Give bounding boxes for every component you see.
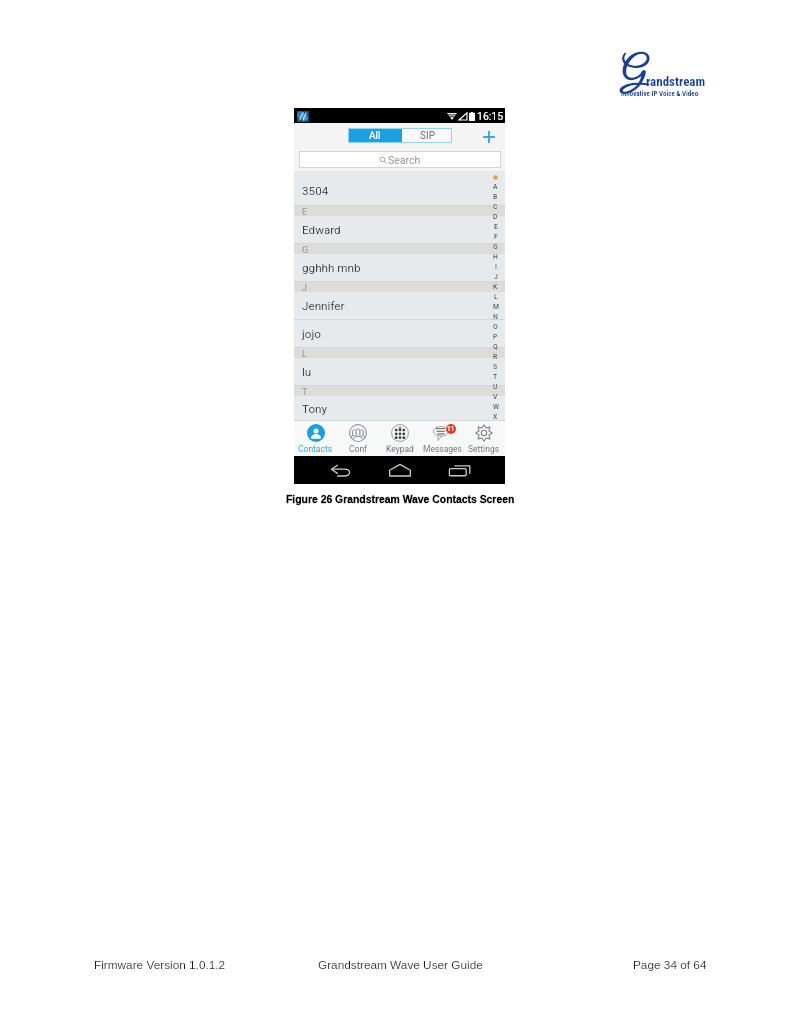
staticText: K <box>493 283 498 291</box>
button[interactable]: Search <box>299 151 501 168</box>
staticText: E <box>302 207 308 217</box>
staticText: T <box>302 387 308 397</box>
staticText: B <box>493 193 498 201</box>
staticText: X <box>493 413 498 421</box>
staticText: T <box>493 373 498 381</box>
staticText: N <box>493 313 498 321</box>
button[interactable]: 11 <box>421 421 463 456</box>
staticText: Conf <box>349 444 368 454</box>
staticText: M <box>493 303 499 311</box>
staticText: Search <box>388 154 421 166</box>
staticText: G <box>621 52 645 95</box>
staticText: G <box>302 245 309 255</box>
staticText: Innovative IP Voice & Video <box>621 90 699 98</box>
button[interactable]: Home <box>387 460 413 480</box>
staticText: F <box>494 233 498 241</box>
staticText: jojo <box>302 327 321 341</box>
staticText: U <box>493 383 498 391</box>
staticText: Page 34 of 64 <box>633 958 707 971</box>
staticText: Grandstream Wave User Guide <box>318 958 483 971</box>
staticText: Jennifer <box>302 299 345 313</box>
staticText: J <box>302 283 307 293</box>
staticText: C <box>493 203 498 211</box>
staticText: Settings <box>468 444 500 454</box>
button[interactable]: 3504 <box>294 171 505 206</box>
staticText: SIP <box>420 130 435 142</box>
button[interactable]: Edward <box>294 216 505 244</box>
staticText: Tony <box>302 402 328 416</box>
staticText: gghhh mnb <box>302 261 361 275</box>
button[interactable]: Back <box>328 460 354 480</box>
button[interactable]: Keypad <box>379 421 421 456</box>
staticText: randstream <box>646 74 706 89</box>
button[interactable]: All <box>348 128 402 143</box>
staticText: R <box>493 353 498 361</box>
staticText: 3504 <box>302 184 329 198</box>
button[interactable]: Conf <box>337 421 379 456</box>
staticText: All <box>369 130 381 142</box>
staticText: H <box>493 253 498 261</box>
staticText: S <box>493 363 498 371</box>
staticText: Contacts <box>298 444 333 454</box>
staticText: I <box>495 263 497 271</box>
staticText: V <box>493 393 498 401</box>
staticText: E <box>494 223 498 231</box>
button[interactable]: Tony <box>294 396 505 421</box>
button[interactable]: SIP <box>402 128 452 143</box>
staticText: Q <box>493 343 498 351</box>
staticText: A <box>493 183 498 191</box>
staticText: P <box>493 333 498 341</box>
staticText: L <box>302 349 307 359</box>
button[interactable]: Settings <box>463 421 505 456</box>
staticText: O <box>493 323 498 331</box>
staticText: 11 <box>447 425 455 433</box>
staticText: W <box>493 403 499 411</box>
staticText: 16:15 <box>477 110 504 122</box>
button[interactable]: Add contact <box>480 128 497 145</box>
staticText: Messages <box>423 444 462 454</box>
button[interactable]: Recent apps <box>446 460 472 480</box>
button[interactable]: jojo <box>294 320 505 348</box>
staticText: Keypad <box>386 444 414 454</box>
button[interactable]: gghhh mnb <box>294 254 505 282</box>
button[interactable]: Contacts <box>294 421 337 456</box>
staticText: L <box>494 293 498 301</box>
staticText: lu <box>302 365 312 379</box>
staticText: J <box>494 273 498 281</box>
staticText: Firmware Version 1.0.1.2 <box>94 958 226 971</box>
button[interactable]: Jennifer <box>294 292 505 320</box>
staticText: D <box>493 213 498 221</box>
staticText: Figure 26 Grandstream Wave Contacts Scre… <box>286 494 515 506</box>
button[interactable]: lu <box>294 358 505 386</box>
staticText: G <box>493 243 498 251</box>
staticText: Edward <box>302 223 341 237</box>
